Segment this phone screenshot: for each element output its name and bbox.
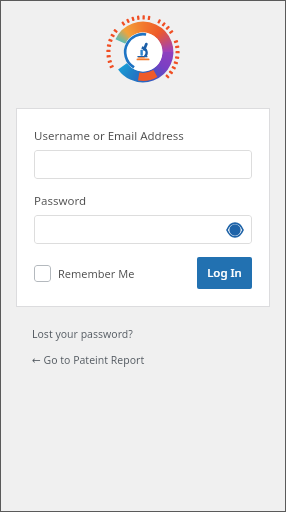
button[interactable]: Show password <box>34 215 252 244</box>
button[interactable]: Log In <box>197 257 252 289</box>
button[interactable] <box>34 150 252 179</box>
staticText: ← Go to Pateint Report <box>32 353 145 367</box>
button[interactable]: Show password <box>225 220 245 240</box>
button[interactable]: Remember Me <box>34 265 135 282</box>
button[interactable]: Lost your password? <box>32 327 133 341</box>
staticText: Log In <box>207 265 242 281</box>
staticText: Username or Email Address <box>34 128 184 144</box>
staticText: Lost your password? <box>32 327 133 341</box>
staticText: Remember Me <box>58 266 135 281</box>
other: Complete Health Care Solution logo <box>105 14 181 90</box>
staticText: Password <box>34 193 87 209</box>
button[interactable]: ← Go to Pateint Report <box>32 353 145 367</box>
